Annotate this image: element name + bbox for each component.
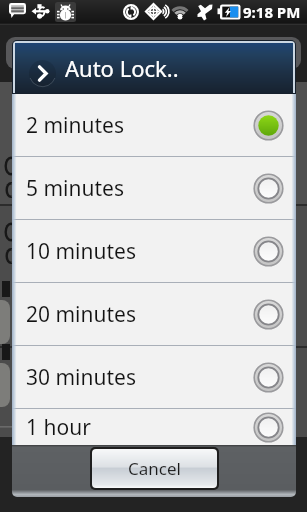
staticText: Auto Lock..: [65, 53, 179, 83]
button[interactable]: 2 minutes: [12, 94, 296, 156]
button[interactable]: 10 minutes: [12, 220, 296, 282]
staticText: 1 hour: [26, 413, 91, 442]
staticText: 10 minutes: [26, 237, 136, 266]
staticText: 20 minutes: [26, 300, 136, 329]
button[interactable]: 30 minutes: [12, 346, 296, 408]
button[interactable]: Cancel: [92, 449, 217, 488]
staticText: 2 minutes: [26, 111, 124, 140]
button[interactable]: 5 minutes: [12, 157, 296, 219]
staticText: Cancel: [128, 457, 181, 480]
staticText: 30 minutes: [26, 363, 136, 392]
staticText: 9:18 PM: [243, 2, 301, 22]
button[interactable]: 20 minutes: [12, 283, 296, 345]
button[interactable]: Back: [29, 60, 56, 87]
staticText: 5 minutes: [26, 174, 124, 203]
button[interactable]: 1 hour: [12, 409, 296, 445]
